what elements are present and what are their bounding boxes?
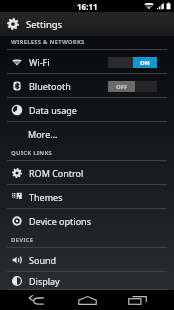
staticText: More… <box>28 128 58 140</box>
button[interactable]: Display <box>0 272 174 290</box>
button[interactable]: Data usage <box>0 98 174 122</box>
button[interactable]: Themes <box>0 185 174 209</box>
staticText: ON <box>140 59 150 67</box>
staticText: Display <box>29 275 157 287</box>
button[interactable]: OFF <box>108 81 157 92</box>
staticText: Data usage <box>29 104 157 116</box>
staticText: Themes <box>29 191 157 203</box>
button[interactable]: ON <box>108 57 157 68</box>
staticText: 16:11 <box>77 1 98 12</box>
staticText: QUICK LINKS <box>11 149 53 157</box>
button[interactable]: Bluetooth <box>0 74 174 98</box>
staticText: DEVICE <box>11 236 34 244</box>
button[interactable]: Recents <box>112 290 162 310</box>
staticText: OFF <box>116 83 128 91</box>
button[interactable]: Back <box>12 290 62 310</box>
staticText: Wi-Fi <box>29 56 108 68</box>
staticText: Sound <box>29 254 157 266</box>
staticText: Bluetooth <box>29 80 108 92</box>
button[interactable]: Home <box>62 290 112 310</box>
staticText: Settings <box>26 18 63 31</box>
button[interactable]: ROM Control <box>0 161 174 185</box>
button[interactable]: More… <box>0 122 174 146</box>
staticText: ROM Control <box>29 167 157 179</box>
staticText: Device options <box>29 215 157 227</box>
button[interactable]: Wi-Fi <box>0 50 174 74</box>
button[interactable]: Device options <box>0 209 174 233</box>
staticText: WIRELESS & NETWORKS <box>11 38 85 46</box>
button[interactable]: Sound <box>0 248 174 272</box>
